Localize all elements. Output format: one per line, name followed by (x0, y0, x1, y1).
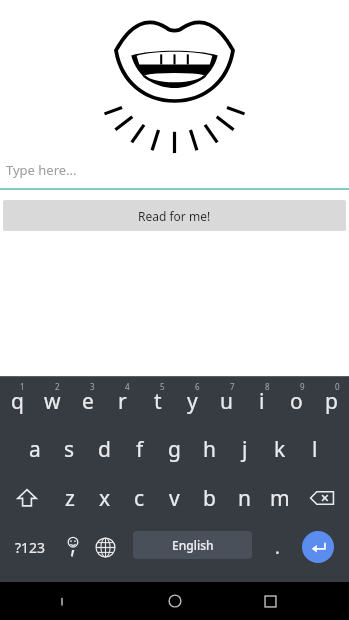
staticText: b (203, 484, 216, 513)
staticText: q (11, 387, 24, 416)
staticText: 4 (125, 381, 130, 392)
button[interactable]: English (133, 531, 252, 559)
staticText: g (168, 435, 181, 464)
staticText: l (312, 435, 318, 464)
button[interactable]: d (87, 426, 122, 472)
button[interactable]: w (35, 378, 70, 424)
button[interactable]: n (227, 475, 262, 521)
button[interactable]: b (192, 475, 227, 521)
button[interactable]: q (0, 378, 35, 424)
staticText: d (98, 435, 111, 464)
staticText: x (99, 484, 111, 513)
staticText: 6 (195, 381, 200, 392)
staticText: r (118, 387, 127, 416)
button[interactable]: Recent apps (245, 582, 295, 620)
button[interactable]: m (262, 475, 297, 521)
button[interactable]: Type here... (0, 155, 349, 190)
staticText: j (242, 435, 248, 464)
staticText: n (238, 484, 251, 513)
staticText: c (134, 484, 145, 513)
staticText: 7 (230, 381, 235, 392)
staticText: h (203, 435, 216, 464)
button[interactable]: x (87, 475, 122, 521)
button[interactable]: c (122, 475, 157, 521)
button[interactable]: s (52, 426, 87, 472)
staticText: k (274, 435, 286, 464)
button[interactable]: Shift (2, 475, 52, 521)
staticText: 0 (335, 381, 340, 392)
button[interactable]: u (209, 378, 244, 424)
staticText: i (259, 387, 265, 416)
button[interactable]: g (157, 426, 192, 472)
button[interactable]: Comma and emoji (58, 524, 88, 570)
staticText: o (290, 387, 303, 416)
staticText: t (154, 387, 162, 416)
button[interactable]: f (122, 426, 157, 472)
staticText: e (82, 387, 94, 416)
staticText: s (64, 435, 75, 464)
button[interactable]: Enter (302, 531, 334, 563)
button[interactable]: r (105, 378, 140, 424)
button[interactable]: l (297, 426, 332, 472)
staticText: u (220, 387, 233, 416)
button[interactable]: . (262, 524, 292, 570)
button[interactable]: t (140, 378, 175, 424)
staticText: 5 (160, 381, 165, 392)
button[interactable]: z (52, 475, 87, 521)
staticText: v (169, 484, 180, 513)
staticText: 1 (20, 381, 25, 392)
staticText: y (187, 387, 198, 416)
button[interactable]: i (244, 378, 279, 424)
button[interactable]: k (262, 426, 297, 472)
button[interactable]: Change language (90, 524, 120, 570)
button[interactable]: ?123 (2, 524, 58, 570)
button[interactable]: e (70, 378, 105, 424)
button[interactable]: v (157, 475, 192, 521)
staticText: English (172, 537, 214, 553)
button[interactable]: Home (150, 582, 200, 620)
staticText: 9 (300, 381, 305, 392)
staticText: z (65, 484, 75, 513)
staticText: 8 (265, 381, 270, 392)
staticText: w (44, 387, 61, 416)
staticText: Read for me! (138, 208, 211, 224)
button[interactable]: Backspace (297, 475, 347, 521)
button[interactable]: o (279, 378, 314, 424)
staticText: m (270, 484, 290, 513)
staticText: f (136, 435, 144, 464)
staticText: 3 (90, 381, 95, 392)
button[interactable]: a (17, 426, 52, 472)
button[interactable]: h (192, 426, 227, 472)
staticText: a (29, 435, 41, 464)
staticText: 2 (55, 381, 60, 392)
button[interactable]: p (314, 378, 349, 424)
staticText: Type here... (6, 161, 77, 179)
button[interactable]: Read for me! (3, 200, 346, 231)
button[interactable]: j (227, 426, 262, 472)
button[interactable]: y (175, 378, 210, 424)
staticText: . (275, 535, 280, 560)
staticText: ?123 (15, 538, 46, 557)
staticText: p (325, 387, 338, 416)
